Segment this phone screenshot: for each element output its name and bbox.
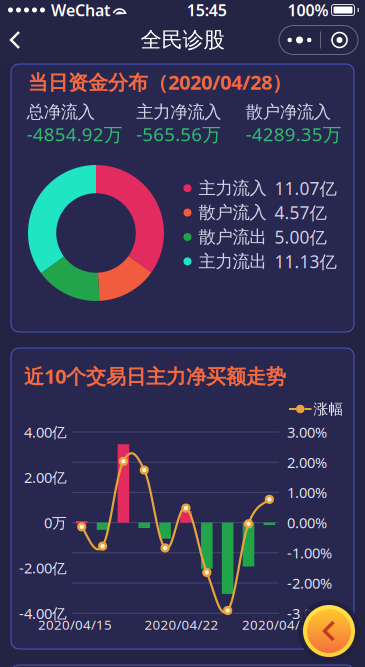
staticText: 主力净流入 — [136, 101, 221, 123]
staticText: -4289.35万 — [246, 122, 342, 146]
staticText: 4.00亿 — [24, 422, 67, 442]
staticText: 0.00% — [287, 513, 327, 532]
staticText: 散户流出 — [198, 226, 266, 248]
staticText: 总净流入 — [27, 101, 95, 123]
staticText: 全民诊股 — [140, 27, 224, 53]
button[interactable]: Back — [298, 600, 360, 662]
staticText: 当日资金分布（2020/04/28） — [28, 69, 292, 95]
staticText: -2.00亿 — [19, 558, 67, 578]
staticText: 主力流出 — [198, 251, 266, 272]
staticText: 涨幅 — [313, 400, 343, 418]
staticText: -4854.92万 — [27, 122, 123, 146]
staticText: 近10个交易日主力净买额走势 — [24, 363, 286, 389]
button[interactable]: More — [279, 26, 320, 53]
button[interactable]: Back — [0, 20, 32, 60]
staticText: 2020/04/28 — [242, 616, 316, 633]
staticText: 4.57亿 — [274, 201, 326, 224]
staticText: 3.00% — [287, 422, 327, 442]
staticText: 主力流入 — [198, 178, 266, 199]
staticText: WeChat — [51, 0, 110, 21]
staticText: 2020/04/15 — [38, 616, 112, 633]
staticText: 11.13亿 — [274, 250, 336, 273]
staticText: -4.00亿 — [19, 603, 67, 623]
staticText: 2.00亿 — [24, 468, 67, 487]
staticText: 2020/04/22 — [144, 616, 218, 633]
staticText: 100% — [287, 0, 328, 21]
staticText: 15:45 — [187, 0, 227, 21]
staticText: 11.07亿 — [274, 177, 336, 200]
staticText: 0万 — [44, 513, 67, 532]
staticText: -565.56万 — [136, 122, 221, 146]
staticText: -1.00% — [287, 543, 332, 563]
button[interactable]: Close mini program — [321, 26, 358, 53]
staticText: 散户流入 — [198, 202, 266, 223]
staticText: -2.00% — [287, 573, 332, 593]
staticText: 散户净流入 — [246, 101, 331, 123]
staticText: 1.00% — [287, 483, 327, 502]
staticText: -3.00% — [287, 603, 332, 623]
staticText: 5.00亿 — [274, 225, 326, 248]
staticText: 2.00% — [287, 452, 327, 472]
